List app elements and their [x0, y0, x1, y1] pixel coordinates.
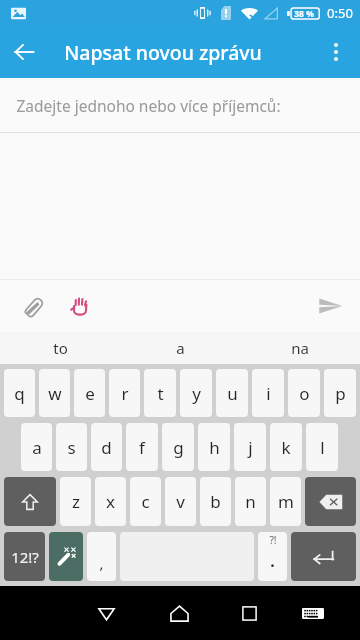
button[interactable]: w: [39, 369, 70, 417]
staticText: o: [299, 382, 310, 405]
button[interactable]: m: [270, 477, 301, 526]
staticText: 0:50: [327, 4, 353, 22]
staticText: b: [210, 490, 221, 513]
staticText: y: [192, 382, 201, 405]
button[interactable]: ?!: [258, 532, 287, 581]
button[interactable]: v: [165, 477, 196, 526]
staticText: x: [106, 490, 115, 513]
button[interactable]: to: [0, 332, 120, 364]
button[interactable]: u: [216, 369, 248, 417]
staticText: s: [67, 436, 76, 459]
button[interactable]: Recent apps: [216, 586, 283, 640]
staticText: m: [278, 490, 294, 513]
staticText: a: [176, 338, 185, 358]
button[interactable]: o: [288, 369, 320, 417]
button[interactable]: Send: [308, 284, 352, 328]
button[interactable]: l: [306, 423, 338, 471]
staticText: k: [281, 436, 291, 459]
staticText: ?!: [269, 533, 277, 547]
staticText: i: [266, 382, 271, 405]
button[interactable]: s: [56, 423, 87, 471]
button[interactable]: z: [60, 477, 91, 526]
staticText: ,: [99, 553, 104, 573]
staticText: to: [53, 338, 68, 358]
button[interactable]: More options: [312, 28, 360, 76]
button[interactable]: f: [126, 423, 158, 471]
button[interactable]: ,: [87, 532, 116, 581]
button[interactable]: e: [74, 369, 105, 417]
staticText: t: [157, 382, 164, 405]
staticText: na: [291, 338, 309, 358]
staticText: f: [139, 436, 145, 459]
staticText: j: [248, 436, 253, 459]
staticText: h: [209, 436, 220, 459]
staticText: r: [121, 382, 129, 405]
staticText: q: [14, 382, 25, 405]
button[interactable]: Enter: [291, 532, 356, 581]
button[interactable]: Shift: [4, 477, 56, 526]
button[interactable]: Zadejte jednoho nebo více příjemců:: [0, 78, 360, 132]
button[interactable]: b: [200, 477, 231, 526]
button[interactable]: Insert emoji: [58, 284, 102, 328]
button[interactable]: r: [109, 369, 140, 417]
button[interactable]: h: [198, 423, 230, 471]
button[interactable]: Symbols: [4, 532, 45, 581]
button[interactable]: na: [240, 332, 360, 364]
button[interactable]: t: [144, 369, 176, 417]
staticText: g: [173, 436, 184, 459]
button[interactable]: Keyboard tools: [49, 532, 83, 581]
button[interactable]: a: [120, 332, 240, 364]
button[interactable]: d: [91, 423, 122, 471]
staticText: d: [101, 436, 112, 459]
staticText: 38 %: [294, 8, 314, 20]
button[interactable]: Back: [0, 28, 48, 76]
button[interactable]: k: [270, 423, 302, 471]
staticText: p: [335, 382, 346, 405]
staticText: Napsat novou zprávu: [64, 39, 262, 66]
button[interactable]: y: [180, 369, 212, 417]
button[interactable]: i: [252, 369, 284, 417]
button[interactable]: q: [4, 369, 35, 417]
button[interactable]: Hide keyboard: [283, 586, 343, 640]
staticText: w: [48, 382, 62, 405]
staticText: u: [227, 382, 238, 405]
staticText: a: [32, 436, 42, 459]
staticText: c: [141, 490, 150, 513]
button[interactable]: a: [21, 423, 52, 471]
staticText: Zadejte jednoho nebo více příjemců:: [16, 95, 281, 116]
staticText: z: [72, 490, 80, 513]
button[interactable]: x: [95, 477, 126, 526]
button[interactable]: c: [130, 477, 161, 526]
staticText: v: [176, 490, 185, 513]
button[interactable]: n: [235, 477, 266, 526]
button[interactable]: Back: [70, 586, 143, 640]
staticText: l: [320, 436, 325, 459]
button[interactable]: p: [324, 369, 356, 417]
button[interactable]: j: [234, 423, 266, 471]
button[interactable]: Backspace: [305, 477, 356, 526]
staticText: .: [270, 550, 275, 572]
button[interactable]: Attach file: [10, 284, 54, 328]
staticText: e: [85, 382, 95, 405]
button[interactable]: Home: [143, 586, 216, 640]
staticText: n: [245, 490, 256, 513]
staticText: 12!?: [11, 547, 39, 567]
button[interactable]: g: [162, 423, 194, 471]
